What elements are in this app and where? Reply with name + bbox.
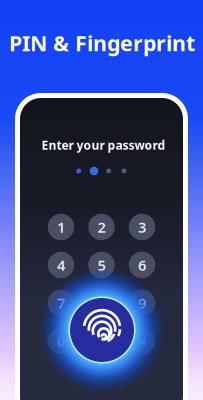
staticText: 8 [97,293,105,313]
staticText: 4 [57,255,65,275]
button[interactable]: 2 [88,214,115,240]
staticText: 3 [138,217,146,237]
staticText: 6 [138,255,146,275]
button[interactable]: 1 [48,214,74,240]
staticText: Enter your password [41,137,165,153]
staticText: 9 [138,293,146,313]
staticText: 5 [97,255,105,275]
staticText: PIN & Fingerprint [9,29,195,57]
button[interactable]: 8 [88,290,115,316]
button[interactable]: 6 [129,252,155,278]
button[interactable]: × [129,328,155,354]
staticText: × [138,331,146,351]
button[interactable]: 5 [88,252,115,278]
button[interactable]: 9 [129,290,155,316]
button[interactable]: 0 [48,328,74,354]
button[interactable]: 3 [129,214,155,240]
staticText: 2 [97,217,105,237]
button[interactable] [88,328,115,354]
staticText: 0 [57,331,65,351]
button[interactable]: 7 [48,290,74,316]
button[interactable]: 4 [48,252,74,278]
staticText: 7 [57,293,65,313]
staticText: 1 [57,217,65,237]
